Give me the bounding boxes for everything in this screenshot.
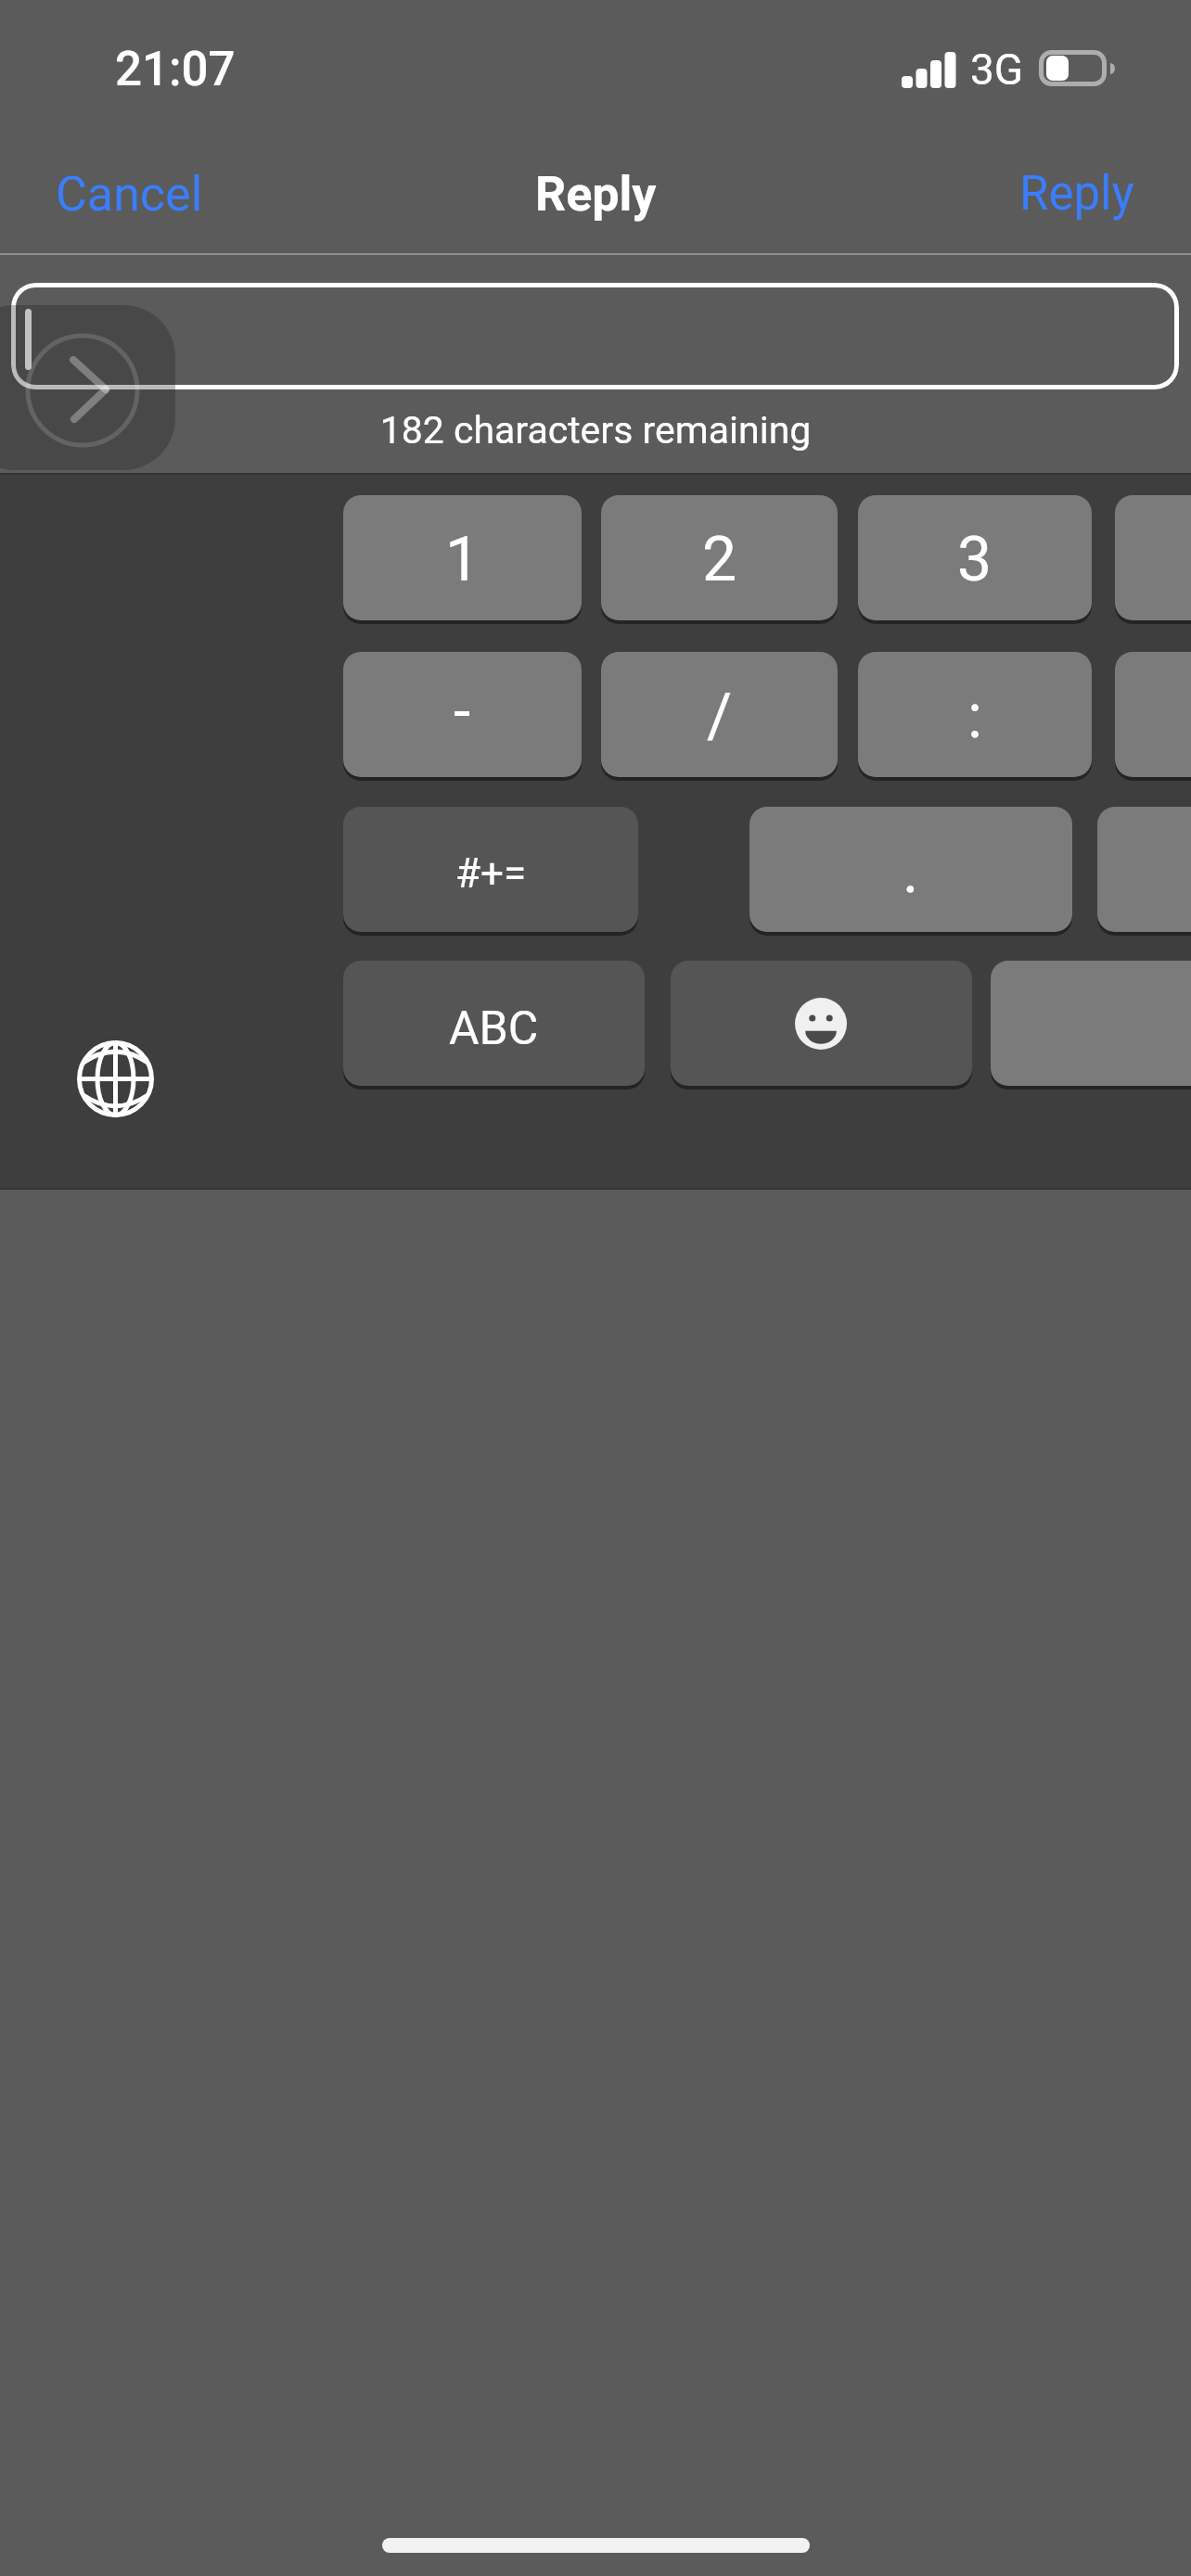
staticText: : [967, 681, 982, 752]
staticText: / [707, 681, 733, 752]
staticText: 1 [445, 524, 480, 595]
staticText: 3G [970, 45, 1024, 95]
button[interactable]: #+= [343, 807, 638, 932]
button[interactable] [11, 283, 1179, 389]
button[interactable]: 4 [1115, 495, 1191, 620]
staticText: Cancel [56, 166, 203, 223]
button[interactable]: Emoji [671, 961, 972, 1086]
button[interactable]: : [858, 652, 1092, 777]
button[interactable]: 2 [601, 495, 838, 620]
button[interactable]: 1 [343, 495, 582, 620]
staticText: 3 [957, 524, 992, 595]
button[interactable]: ; [1115, 652, 1191, 777]
staticText: #+= [455, 849, 527, 898]
button[interactable]: - [343, 652, 582, 777]
button[interactable]: . [749, 807, 1072, 932]
button[interactable]: , [1097, 807, 1191, 932]
staticText: - [454, 676, 471, 747]
staticText: . [903, 835, 919, 907]
staticText: 182 characters remaining [0, 408, 1191, 453]
button[interactable]: Cancel [18, 147, 241, 241]
staticText: Reply [535, 166, 657, 223]
staticText: ABC [449, 1001, 539, 1056]
button[interactable]: Space [991, 961, 1191, 1086]
staticText: 21:07 [115, 42, 236, 97]
button[interactable]: ABC [343, 961, 645, 1086]
button[interactable]: Change keyboard language [77, 1040, 154, 1117]
button[interactable]: 3 [858, 495, 1092, 620]
button[interactable]: Reply [981, 147, 1172, 240]
staticText: 2 [702, 524, 737, 595]
button[interactable]: / [601, 652, 838, 777]
staticText: Reply [1019, 166, 1134, 222]
